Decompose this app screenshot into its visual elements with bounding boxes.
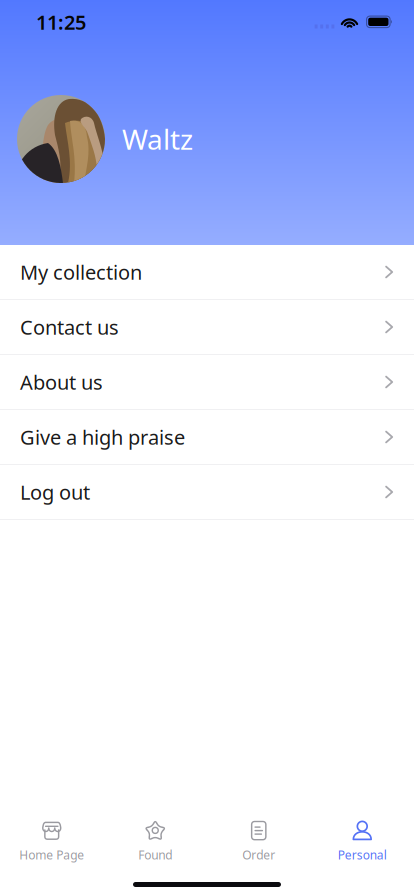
button[interactable]: Log out	[0, 465, 414, 520]
staticText: Home Page	[19, 847, 84, 863]
staticText: Log out	[20, 479, 90, 505]
button[interactable]: Home Page	[0, 800, 103, 863]
button[interactable]: Contact us	[0, 300, 414, 355]
staticText: Found	[138, 847, 172, 863]
button[interactable]: Personal	[310, 800, 414, 863]
staticText: Contact us	[20, 314, 119, 340]
button[interactable]: About us	[0, 355, 414, 410]
staticText: 11:25	[36, 9, 86, 35]
button[interactable]: Found	[103, 800, 207, 863]
staticText: Order	[242, 847, 275, 863]
staticText: Give a high praise	[20, 424, 185, 450]
staticText: Waltz	[122, 120, 193, 158]
staticText: Personal	[338, 847, 387, 863]
staticText: About us	[20, 369, 103, 395]
staticText: My collection	[20, 259, 142, 285]
button[interactable]: My collection	[0, 245, 414, 300]
button[interactable]: Order	[207, 800, 310, 863]
button[interactable]: Give a high praise	[0, 410, 414, 465]
